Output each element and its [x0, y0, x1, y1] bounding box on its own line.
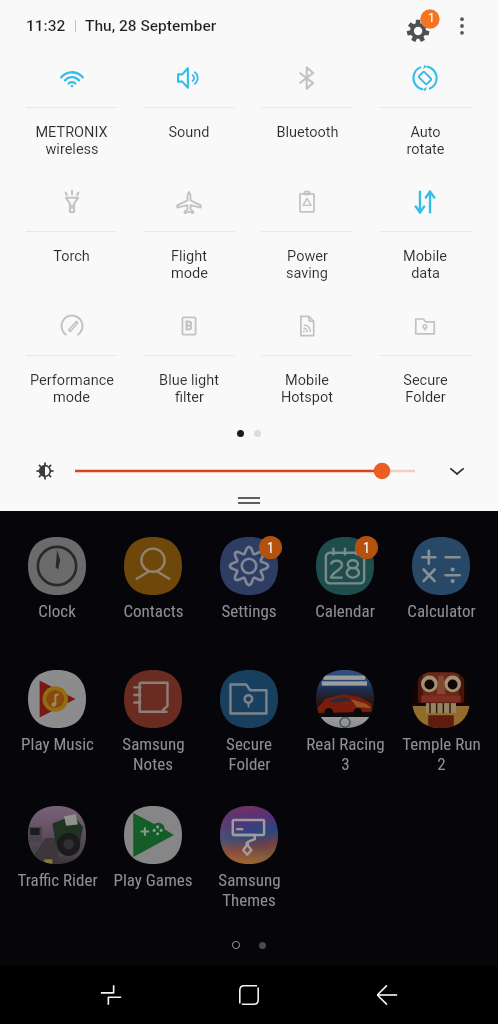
button[interactable]: Performance: [13, 296, 130, 420]
staticText: Folder: [228, 754, 271, 774]
button[interactable]: Samsung: [201, 801, 297, 910]
button[interactable]: 1: [297, 532, 393, 621]
button[interactable]: Expand quick settings: [415, 449, 498, 493]
button[interactable]: Torch: [13, 172, 130, 296]
button[interactable]: Play Music: [9, 665, 105, 754]
button[interactable]: Play Games: [105, 801, 201, 890]
button[interactable]: Temple Run: [393, 665, 489, 774]
button[interactable]: Power: [248, 172, 366, 296]
staticText: Mobile: [403, 248, 447, 265]
staticText: 1: [428, 11, 435, 25]
button[interactable]: Calculator: [393, 532, 489, 621]
staticText: Secure: [403, 372, 448, 389]
button[interactable]: B: [130, 296, 248, 420]
button[interactable]: Secure: [201, 665, 297, 774]
staticText: mode: [171, 265, 208, 282]
button[interactable]: Home: [221, 967, 277, 1023]
staticText: Themes: [222, 890, 276, 910]
staticText: Traffic Rider: [17, 870, 98, 890]
staticText: Settings: [221, 601, 277, 621]
button[interactable]: Sound: [130, 48, 248, 172]
staticText: 2: [437, 754, 446, 774]
staticText: Contacts: [123, 601, 184, 621]
staticText: mode: [53, 389, 90, 406]
staticText: Secure: [226, 734, 272, 754]
staticText: filter: [175, 389, 204, 406]
button[interactable]: Secure: [366, 296, 484, 420]
staticText: Hotspot: [281, 389, 333, 406]
staticText: Power: [287, 248, 328, 265]
button[interactable]: Quick settings: [403, 6, 443, 46]
staticText: Samsung: [122, 734, 185, 754]
button[interactable]: Auto: [366, 48, 484, 172]
staticText: wireless: [45, 141, 99, 158]
button[interactable]: Back: [359, 967, 415, 1023]
staticText: Thu, 28 September: [85, 17, 217, 35]
staticText: Torch: [53, 248, 90, 265]
button[interactable]: Traffic Rider: [9, 801, 105, 890]
button[interactable]: Clock: [9, 532, 105, 621]
staticText: Mobile: [285, 372, 329, 389]
button[interactable]: Bluetooth: [248, 48, 366, 172]
staticText: Blue light: [159, 372, 219, 389]
staticText: Flight: [171, 248, 207, 265]
button[interactable]: Recent apps: [83, 967, 139, 1023]
staticText: saving: [286, 265, 328, 282]
staticText: Bluetooth: [276, 124, 339, 141]
button[interactable]: Real Racing: [297, 665, 393, 774]
staticText: rotate: [406, 141, 445, 158]
button[interactable]: Mobile: [248, 296, 366, 420]
staticText: Temple Run: [402, 734, 481, 754]
staticText: Performance: [30, 372, 114, 389]
button[interactable]: Contacts: [105, 532, 201, 621]
staticText: 3: [341, 754, 350, 774]
staticText: 11:32: [26, 17, 66, 35]
staticText: B: [185, 319, 193, 333]
staticText: Notes: [133, 754, 173, 774]
staticText: Calculator: [407, 601, 476, 621]
button[interactable]: Mobile: [366, 172, 484, 296]
staticText: Auto: [410, 124, 441, 141]
staticText: data: [411, 265, 440, 282]
staticText: Play Games: [113, 870, 193, 890]
staticText: Samsung: [218, 870, 281, 890]
button[interactable]: Flight: [130, 172, 248, 296]
staticText: Folder: [405, 389, 446, 406]
button[interactable]: METRONIX: [13, 48, 130, 172]
staticText: Clock: [38, 601, 76, 621]
staticText: 1: [267, 540, 274, 556]
staticText: Sound: [168, 124, 210, 141]
staticText: 1: [363, 540, 370, 556]
button[interactable]: More options: [444, 8, 480, 44]
staticText: Real Racing: [306, 734, 385, 754]
button[interactable]: 1: [201, 532, 297, 621]
staticText: Calendar: [315, 601, 375, 621]
staticText: Play Music: [21, 734, 94, 754]
staticText: METRONIX: [35, 124, 108, 141]
button[interactable]: Samsung: [105, 665, 201, 774]
